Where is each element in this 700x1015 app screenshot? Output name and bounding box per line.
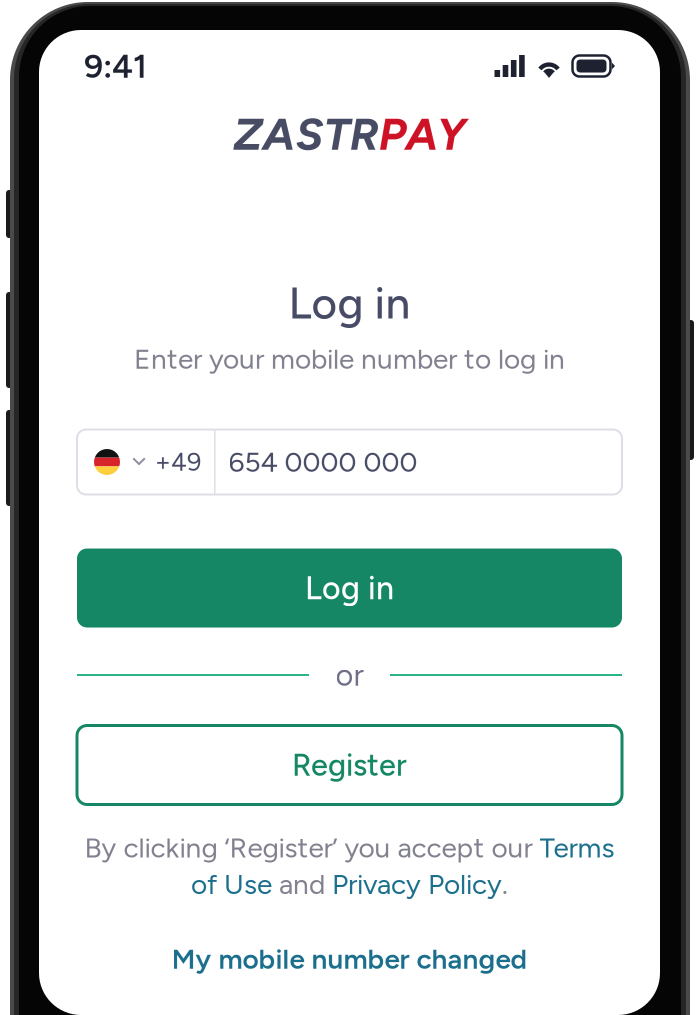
staticText: of Use: [191, 867, 272, 901]
button[interactable]: Select country code: [77, 429, 214, 494]
staticText: +49: [155, 447, 201, 477]
staticText: and: [272, 867, 332, 901]
staticText: or: [335, 657, 363, 693]
staticText: Enter your mobile number to log in: [134, 342, 565, 376]
staticText: Register: [292, 747, 407, 783]
button[interactable]: My mobile number changed: [171, 942, 527, 976]
staticText: Privacy Policy: [332, 867, 502, 901]
button[interactable]: Register: [77, 725, 622, 804]
staticText: Log in: [288, 277, 410, 329]
staticText: Log in: [305, 569, 394, 607]
staticText: PAY: [378, 107, 465, 161]
button[interactable]: Log in: [77, 548, 622, 627]
staticText: Terms: [539, 831, 614, 864]
staticText: My mobile number changed: [171, 942, 527, 976]
staticText: .: [502, 867, 508, 901]
staticText: By clicking ‘Register’ you accept our: [84, 831, 539, 864]
staticText: 654 0000 000: [228, 445, 417, 479]
staticText: ZASTR: [233, 107, 378, 161]
staticText: 9:41: [84, 46, 147, 86]
